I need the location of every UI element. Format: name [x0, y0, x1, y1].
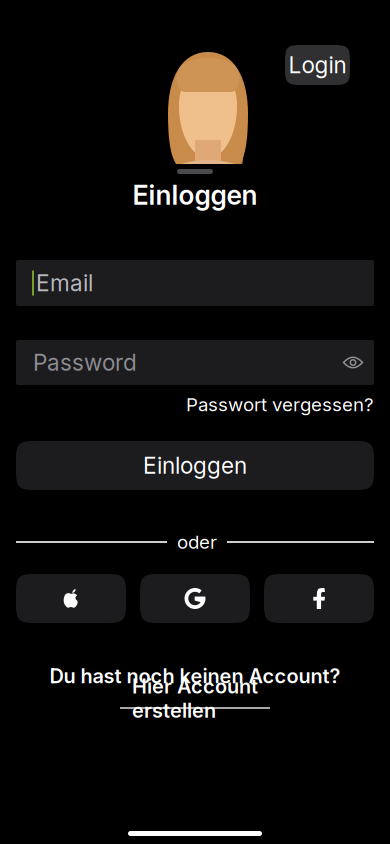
staticText: Passwort vergessen?: [186, 393, 374, 416]
staticText: Hier Account erstellen: [132, 674, 258, 723]
button[interactable]: Login: [285, 45, 350, 85]
staticText: Einloggen: [143, 452, 247, 479]
button[interactable]: Einloggen: [16, 441, 374, 490]
button[interactable]: Continue with Google: [140, 574, 250, 623]
button[interactable]: Continue with Apple: [16, 574, 126, 623]
button[interactable]: Hier Account erstellen: [120, 689, 270, 709]
staticText: Du hast noch keinen Account?: [49, 664, 340, 688]
button[interactable]: Show password: [332, 340, 374, 385]
button[interactable]: Passwort vergessen?: [186, 396, 374, 413]
button[interactable]: Continue with Facebook: [264, 574, 374, 623]
staticText: oder: [177, 531, 217, 553]
staticText: Einloggen: [132, 179, 257, 211]
staticText: Password: [33, 349, 137, 376]
staticText: Email: [36, 269, 93, 297]
staticText: Login: [288, 51, 346, 79]
